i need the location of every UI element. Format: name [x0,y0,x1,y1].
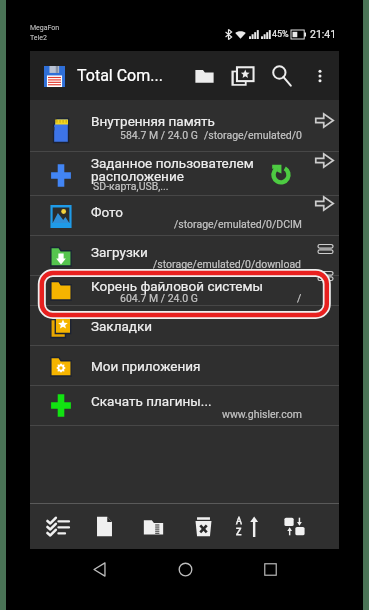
staticText: /storage/emulated/0/DCIM [174,218,302,230]
staticText: / [297,292,302,304]
staticText: 604.7 M / 24.0 G [120,292,198,304]
button[interactable]: Back [82,552,116,586]
button[interactable]: More options [303,54,337,98]
staticText: Корень файловой системы [91,278,309,294]
staticText: MegaFon [30,24,60,32]
staticText: A [236,516,242,527]
button[interactable]: Sort [230,504,266,549]
button[interactable]: Скачать плагины... [30,386,339,425]
staticText: Total Com... [77,66,163,85]
staticText: Мои приложения [91,358,309,374]
button[interactable]: Zip [135,504,171,549]
button[interactable]: Home [168,552,202,586]
button[interactable]: Корень файловой системы [30,276,339,305]
button[interactable]: Recents [253,552,287,586]
staticText: Tele2 [30,34,47,42]
staticText: 584.7 M / 24.0 G [120,129,198,141]
staticText: Скачать плагины... [91,393,309,409]
staticText: 21:41 [310,28,337,40]
staticText: Фото [91,204,309,220]
staticText: SD-карта,USB,... [93,180,169,192]
button[interactable]: Мои приложения [30,346,339,385]
staticText: 45% [272,29,289,40]
button[interactable]: Закладки [30,306,339,345]
staticText: /storage/emulated/0 [204,129,302,141]
button[interactable]: Заданное пользователем расположение [30,152,339,195]
button[interactable]: Open folder [185,54,223,98]
staticText: Внутренняя память [91,113,309,129]
staticText: Z [236,527,242,537]
staticText: Закладки [91,318,309,334]
button[interactable]: Загрузки [30,236,339,275]
button[interactable]: Transfer [276,504,312,549]
button[interactable]: Delete [185,504,221,549]
staticText: Заданное пользователем расположение [91,155,309,184]
button[interactable] [39,61,69,91]
button[interactable]: New file [86,504,122,549]
button[interactable]: Фото [30,196,339,235]
button[interactable]: Select all [40,504,76,549]
button[interactable]: Search [261,54,303,98]
staticText: /storage/emulated/0/download [153,258,302,270]
staticText: Загрузки [91,244,309,260]
button[interactable]: Внутренняя память [30,108,339,151]
button[interactable]: Bookmarks [223,54,261,98]
staticText: www.ghisler.com [222,408,302,420]
